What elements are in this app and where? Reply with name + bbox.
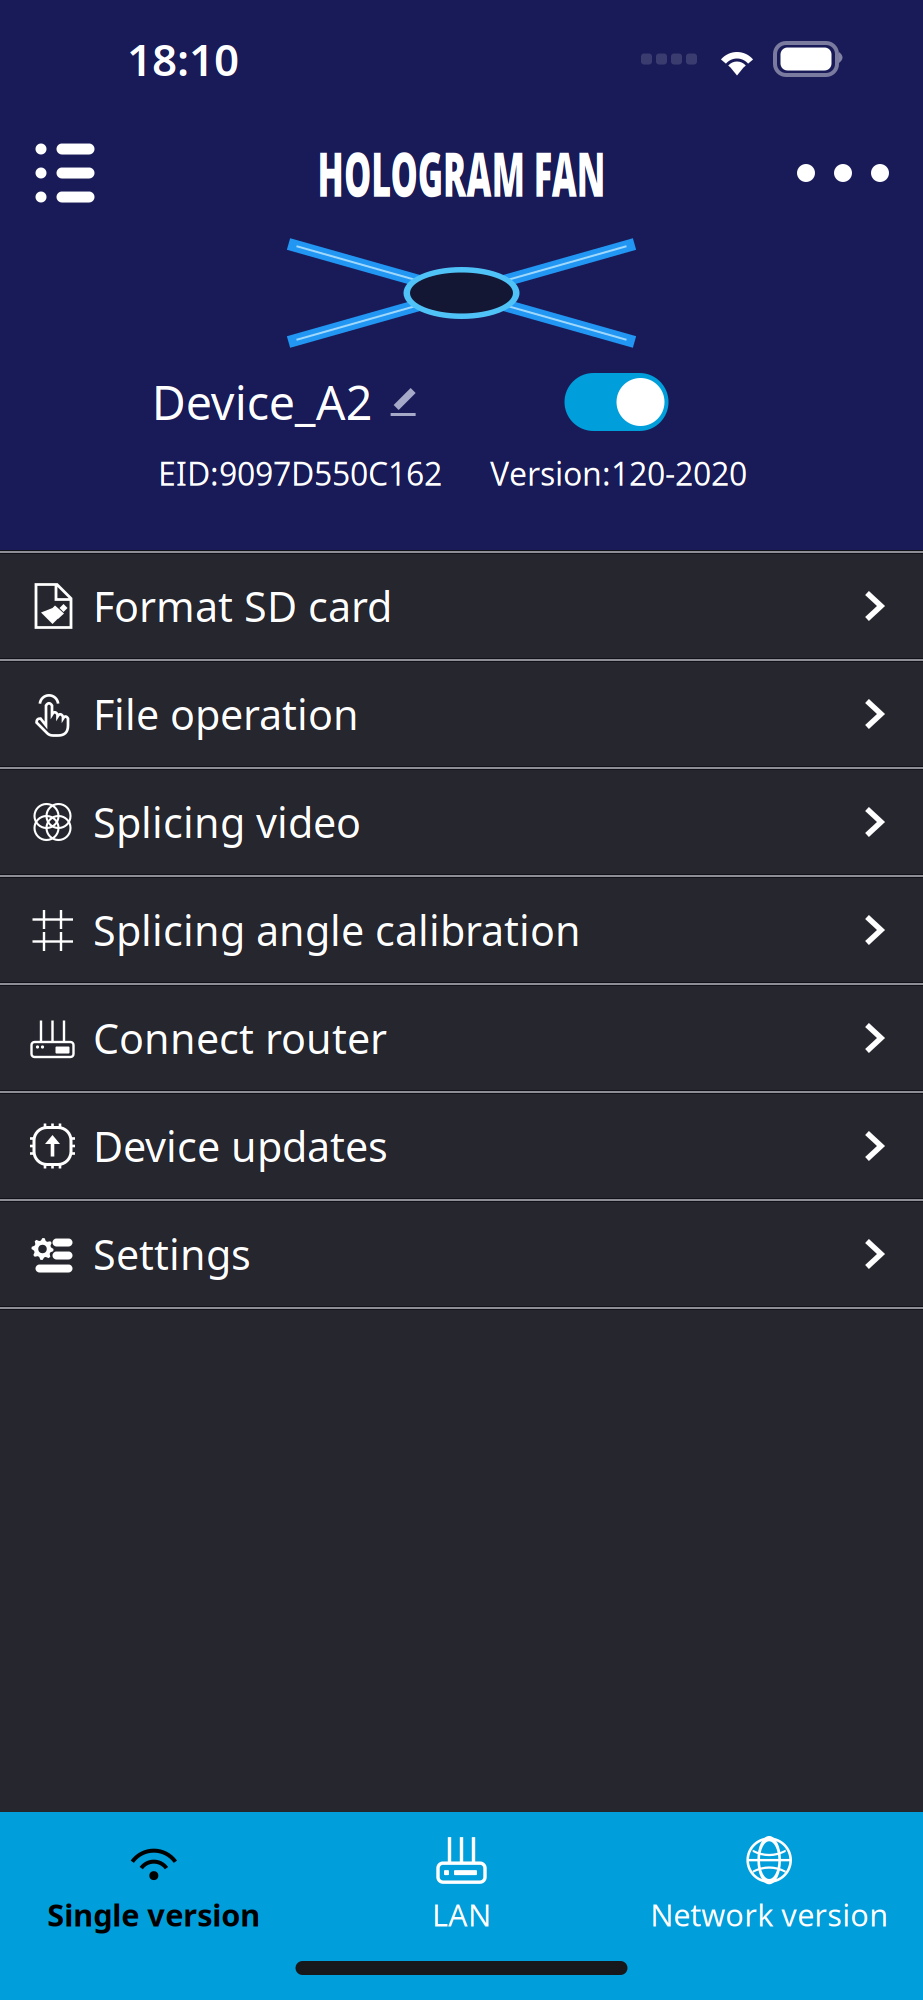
button[interactable]: Settings <box>0 1202 923 1306</box>
staticText: Splicing angle calibration <box>93 903 581 957</box>
staticText: LAN <box>432 1894 491 1935</box>
staticText: Device_A2 <box>152 371 373 433</box>
staticText: Splicing video <box>93 795 361 849</box>
staticText: HOLOGRAM FAN <box>204 132 718 214</box>
button[interactable]: Connect router <box>0 986 923 1090</box>
staticText: Format SD card <box>93 579 392 633</box>
staticText: Single version <box>47 1894 260 1935</box>
staticText: 18:10 <box>127 30 239 88</box>
staticText: Connect router <box>93 1011 387 1065</box>
button[interactable]: Format SD card <box>0 554 923 658</box>
button[interactable]: Menu <box>10 123 120 223</box>
staticText: Device updates <box>93 1119 388 1173</box>
button[interactable]: Splicing angle calibration <box>0 878 923 982</box>
button[interactable]: Device updates <box>0 1094 923 1198</box>
staticText: EID:9097D550C162 <box>158 452 442 494</box>
button[interactable]: Network version <box>615 1826 923 1946</box>
button[interactable]: LAN <box>308 1826 615 1946</box>
staticText: Network version <box>650 1894 888 1935</box>
staticText: Settings <box>93 1227 251 1281</box>
staticText: File operation <box>93 687 359 741</box>
staticText: Version:120-2020 <box>490 452 747 494</box>
button[interactable]: Power toggle <box>564 373 668 431</box>
button[interactable]: File operation <box>0 662 923 766</box>
button[interactable]: Splicing video <box>0 770 923 874</box>
button[interactable]: Single version <box>0 1826 308 1946</box>
button[interactable]: More options <box>783 123 903 223</box>
